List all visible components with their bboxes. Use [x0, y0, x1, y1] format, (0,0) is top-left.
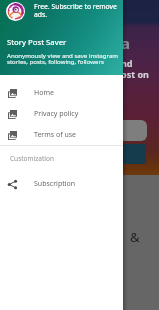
- staticText: Terms of use: [34, 130, 77, 140]
- staticText: Home: [34, 88, 54, 98]
- staticText: &: [130, 228, 140, 246]
- staticText: Story Post Saver: [7, 37, 67, 48]
- staticText: Privacy policy: [34, 109, 79, 119]
- staticText: Free. Subscribe to remove ads.: [34, 2, 118, 19]
- button[interactable]: Home: [0, 82, 123, 103]
- button[interactable]: Terms of use: [0, 124, 123, 145]
- other: App logo: [6, 2, 25, 21]
- staticText: a: [121, 33, 130, 53]
- staticText: Subscription: [34, 179, 76, 189]
- staticText: Customization: [10, 154, 54, 163]
- staticText: Anonymously view and save instagram stor…: [7, 51, 121, 66]
- staticText: nd ost on: [121, 57, 149, 81]
- button[interactable]: Privacy policy: [0, 103, 123, 124]
- button[interactable]: Subscription: [0, 173, 123, 194]
